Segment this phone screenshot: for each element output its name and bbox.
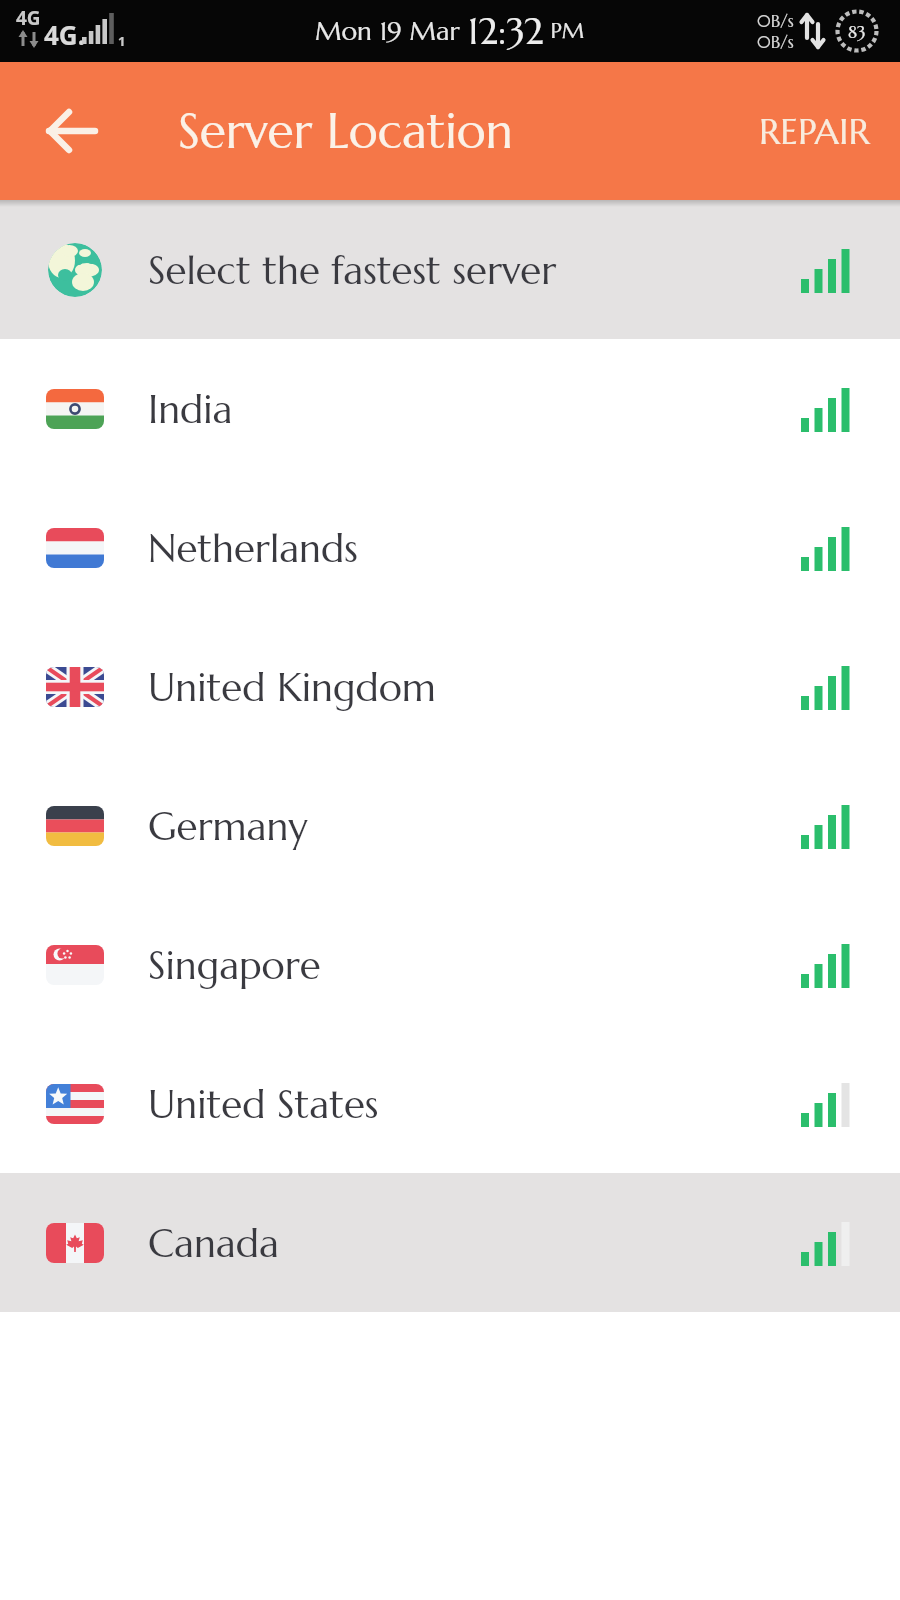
staticText: 4G: [16, 5, 41, 31]
button[interactable]: REPAIR: [759, 109, 870, 154]
staticText: Server Location: [178, 101, 513, 161]
button[interactable]: United Kingdom: [0, 617, 900, 756]
button[interactable]: Germany: [0, 756, 900, 895]
staticText: Mon 19 Mar: [315, 15, 468, 48]
staticText: 12:32: [468, 8, 544, 54]
button[interactable]: India: [0, 339, 900, 478]
staticText: PM: [544, 17, 585, 45]
staticText: 0B/s: [757, 31, 794, 52]
staticText: Germany: [148, 802, 308, 850]
staticText: Select the fastest server: [148, 246, 557, 294]
staticText: United States: [148, 1080, 379, 1128]
button[interactable]: Netherlands: [0, 478, 900, 617]
staticText: United Kingdom: [148, 663, 436, 711]
button[interactable]: Canada: [0, 1173, 900, 1312]
staticText: 0B/s: [757, 10, 794, 31]
button[interactable]: Singapore: [0, 895, 900, 1034]
staticText: 1: [118, 32, 126, 50]
staticText: 4G.: [44, 17, 86, 52]
staticText: Singapore: [148, 941, 321, 989]
staticText: REPAIR: [759, 109, 870, 154]
button[interactable]: Select the fastest server: [0, 200, 900, 339]
staticText: India: [148, 385, 233, 433]
button[interactable]: United States: [0, 1034, 900, 1173]
staticText: Canada: [148, 1219, 279, 1267]
staticText: 83: [848, 21, 866, 42]
staticText: Netherlands: [148, 524, 358, 572]
button[interactable]: [40, 99, 104, 163]
